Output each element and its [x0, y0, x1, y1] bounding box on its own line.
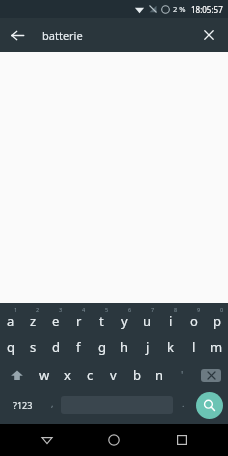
button[interactable]: 1	[0, 305, 22, 333]
button[interactable]: 2	[22, 305, 44, 333]
staticText: z	[30, 312, 37, 330]
staticText: 4	[82, 306, 86, 313]
staticText: y	[121, 312, 128, 330]
button[interactable]: f	[67, 333, 90, 361]
staticText: 9	[197, 306, 201, 313]
button[interactable]: d	[44, 333, 67, 361]
staticText: batterie	[42, 28, 192, 43]
staticText: x	[64, 366, 71, 384]
staticText: 0	[220, 306, 224, 313]
staticText: g	[98, 338, 106, 356]
button[interactable]: h	[113, 333, 136, 361]
staticText: 8	[174, 306, 178, 313]
staticText: a	[7, 312, 15, 330]
staticText: c	[87, 366, 94, 384]
button[interactable]: m	[205, 333, 228, 361]
button[interactable]: j	[136, 333, 159, 361]
staticText: m	[210, 338, 223, 356]
button[interactable]: Home	[93, 424, 135, 456]
button[interactable]: Search	[196, 392, 223, 419]
staticText: 7	[151, 306, 155, 313]
staticText: ,	[51, 397, 54, 409]
button[interactable]: 0	[205, 305, 228, 333]
staticText: k	[167, 338, 174, 356]
staticText: w	[39, 366, 50, 384]
staticText: q	[7, 338, 15, 356]
button[interactable]: Recent apps	[161, 424, 203, 456]
button[interactable]: q	[0, 333, 22, 361]
staticText: i	[169, 312, 173, 330]
staticText: h	[120, 338, 129, 356]
button[interactable]: s	[22, 333, 44, 361]
staticText: 3	[59, 306, 63, 313]
staticText: .	[182, 397, 185, 409]
staticText: o	[190, 312, 198, 330]
button[interactable]: b	[125, 361, 148, 389]
button[interactable]: 9	[182, 305, 205, 333]
staticText: l	[192, 338, 196, 356]
button[interactable]: Clear	[192, 18, 226, 52]
staticText: s	[30, 338, 37, 356]
staticText: u	[143, 312, 152, 330]
button[interactable]: Back	[0, 18, 34, 52]
button[interactable]: l	[182, 333, 205, 361]
button[interactable]: n	[148, 361, 171, 389]
staticText: 1	[14, 306, 18, 313]
button[interactable]: k	[159, 333, 182, 361]
button[interactable]: 4	[67, 305, 90, 333]
staticText: 18:05:57	[191, 4, 223, 15]
button[interactable]: w	[33, 361, 56, 389]
staticText: '	[181, 368, 184, 382]
staticText: 2 %	[173, 4, 186, 14]
button[interactable]: Back	[26, 424, 68, 456]
staticText: 6	[128, 306, 132, 313]
staticText: e	[52, 312, 60, 330]
staticText: 5	[105, 306, 109, 313]
staticText: p	[213, 312, 221, 330]
staticText: j	[146, 338, 150, 356]
staticText: t	[99, 312, 104, 330]
button[interactable]: Shift	[0, 361, 33, 389]
button[interactable]: 7	[136, 305, 159, 333]
staticText: n	[155, 366, 164, 384]
button[interactable]: v	[102, 361, 125, 389]
button[interactable]: c	[79, 361, 102, 389]
button[interactable]: Backspace	[194, 361, 228, 389]
button[interactable]: g	[90, 333, 113, 361]
staticText: d	[52, 338, 60, 356]
staticText: f	[76, 338, 81, 356]
button[interactable]: '	[171, 361, 194, 389]
button[interactable]: 5	[90, 305, 113, 333]
button[interactable]: 3	[44, 305, 67, 333]
button[interactable]: ,	[46, 389, 58, 421]
staticText: b	[133, 366, 141, 384]
button[interactable]: ?123	[0, 389, 46, 421]
button[interactable]: 6	[113, 305, 136, 333]
staticText: r	[76, 312, 82, 330]
staticText: ?123	[13, 399, 33, 411]
button[interactable]: .	[176, 389, 190, 421]
staticText: 2	[36, 306, 40, 313]
button[interactable]: 8	[159, 305, 182, 333]
button[interactable]: x	[56, 361, 79, 389]
staticText: v	[110, 366, 117, 384]
